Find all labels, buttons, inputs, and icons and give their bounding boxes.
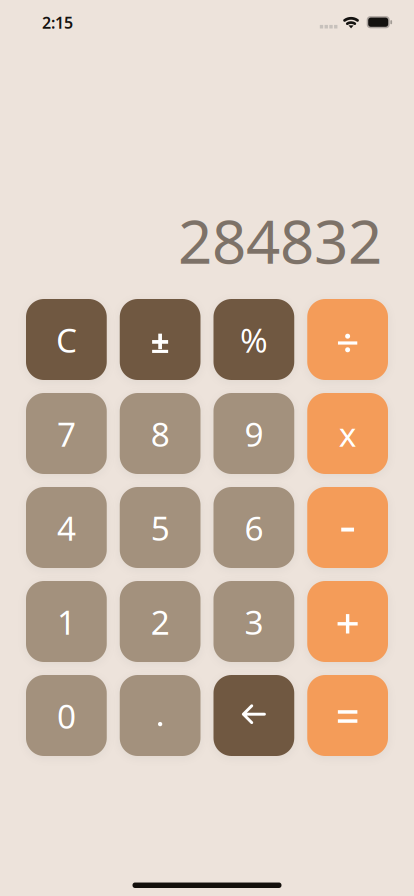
button[interactable]: 9: [213, 393, 294, 474]
staticText: 0: [57, 694, 76, 738]
button[interactable]: 2: [120, 581, 201, 662]
staticText: %: [240, 318, 268, 362]
button[interactable]: 4: [26, 487, 107, 568]
staticText: 284832: [178, 201, 382, 280]
button[interactable]: 8: [120, 393, 201, 474]
button[interactable]: 7: [26, 393, 107, 474]
staticText: 2:15: [42, 12, 73, 33]
button[interactable]: Decimal point: [120, 675, 201, 756]
staticText: 6: [244, 506, 263, 550]
button[interactable]: 3: [213, 581, 294, 662]
button[interactable]: Add: [307, 581, 388, 662]
button[interactable]: 6: [213, 487, 294, 568]
staticText: 7: [57, 412, 76, 456]
button[interactable]: 0: [26, 675, 107, 756]
staticText: 1: [57, 600, 76, 644]
staticText: 4: [57, 506, 76, 550]
button[interactable]: Plus or minus: [120, 299, 201, 380]
button[interactable]: %: [213, 299, 294, 380]
button[interactable]: C: [26, 299, 107, 380]
staticText: 8: [151, 412, 170, 456]
staticText: x: [339, 412, 357, 456]
button[interactable]: Equals: [307, 675, 388, 756]
staticText: 3: [244, 600, 263, 644]
staticText: 9: [244, 412, 263, 456]
button[interactable]: x: [307, 393, 388, 474]
button[interactable]: Subtract: [307, 487, 388, 568]
staticText: C: [56, 318, 77, 362]
staticText: 2: [151, 600, 170, 644]
button[interactable]: 1: [26, 581, 107, 662]
staticText: 5: [151, 506, 170, 550]
button[interactable]: Divide: [307, 299, 388, 380]
button[interactable]: 5: [120, 487, 201, 568]
button[interactable]: Delete: [213, 675, 294, 756]
